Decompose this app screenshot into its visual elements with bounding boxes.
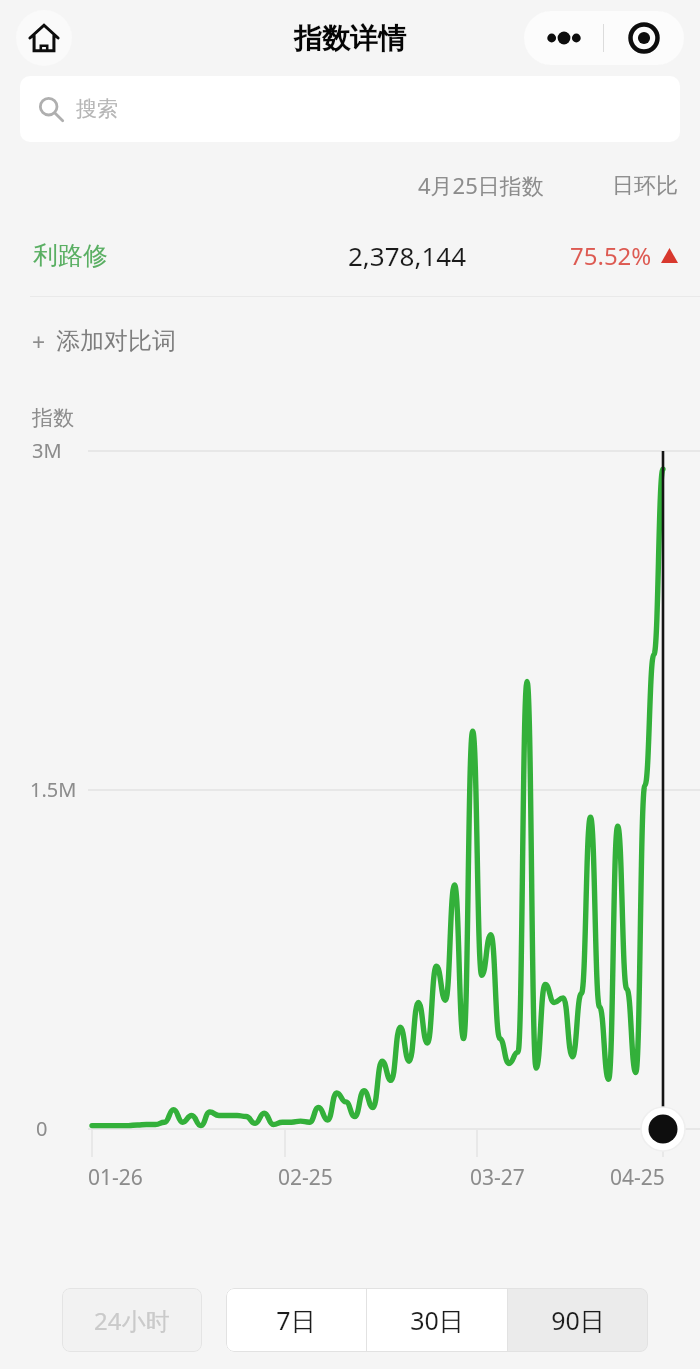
button[interactable]: 搜索: [20, 76, 680, 142]
staticText: 30日: [410, 1303, 464, 1337]
staticText: 03-27: [470, 1163, 525, 1192]
staticText: 指数: [32, 405, 74, 431]
staticText: 日环比: [612, 172, 678, 200]
staticText: 4月25日指数: [418, 170, 544, 200]
button[interactable]: Home: [16, 10, 72, 66]
staticText: 02-25: [278, 1163, 333, 1192]
staticText: 90日: [551, 1303, 605, 1337]
button[interactable]: 30日: [367, 1288, 507, 1352]
staticText: 1.5M: [30, 776, 77, 803]
staticText: 04-25: [610, 1163, 665, 1192]
button[interactable]: Close mini program: [604, 11, 684, 65]
staticText: 添加对比词: [56, 326, 176, 356]
staticText: 利路修: [33, 240, 108, 271]
staticText: 01-26: [88, 1163, 143, 1192]
staticText: 指数详情: [294, 21, 406, 56]
button[interactable]: 90日: [508, 1288, 648, 1352]
button[interactable]: 7日: [226, 1288, 366, 1352]
staticText: 3M: [32, 437, 62, 464]
staticText: 7日: [276, 1303, 316, 1337]
button[interactable]: +: [32, 297, 176, 385]
staticText: 2,378,144: [348, 238, 467, 273]
staticText: 0: [36, 1115, 48, 1142]
button[interactable]: 24小时: [62, 1288, 202, 1352]
button[interactable]: More options: [524, 11, 603, 65]
staticText: 75.52%: [570, 239, 652, 272]
button[interactable]: 利路修: [0, 214, 700, 296]
staticText: 搜索: [76, 96, 118, 122]
staticText: +: [32, 326, 46, 357]
staticText: 24小时: [94, 1304, 170, 1337]
